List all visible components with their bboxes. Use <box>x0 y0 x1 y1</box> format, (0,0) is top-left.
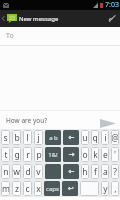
staticText: 7:03 <box>105 0 119 10</box>
staticText: k <box>93 149 98 161</box>
staticText: s <box>3 132 8 144</box>
button[interactable]: e <box>101 147 109 162</box>
button[interactable]: p <box>34 147 43 162</box>
staticText: h <box>82 166 88 178</box>
button[interactable]: a <box>101 164 109 179</box>
button[interactable]: Attach <box>105 10 120 27</box>
button[interactable]: Send <box>97 111 120 129</box>
button[interactable]: i <box>101 130 109 145</box>
button[interactable]: j <box>34 130 43 145</box>
staticText: r <box>26 149 30 161</box>
staticText: g <box>14 149 20 161</box>
button[interactable]: key <box>45 164 61 179</box>
button[interactable]: key <box>63 147 79 162</box>
staticText: q <box>92 132 98 144</box>
staticText: f <box>94 166 97 178</box>
button[interactable]: 1&! <box>45 147 61 162</box>
staticText: @ <box>111 132 119 144</box>
staticText: caps <box>46 185 59 193</box>
button[interactable]: c <box>23 181 32 196</box>
staticText: p <box>36 149 42 161</box>
button[interactable]: y <box>101 181 109 196</box>
button[interactable]: q <box>91 130 99 145</box>
button[interactable]: g <box>12 147 21 162</box>
button[interactable]: x <box>34 181 42 196</box>
staticText: , <box>114 183 117 195</box>
staticText: y <box>103 183 108 195</box>
staticText: m <box>2 183 10 195</box>
staticText: d <box>25 166 31 178</box>
staticText: a b <box>49 134 58 142</box>
button[interactable]: h <box>81 164 89 179</box>
button[interactable]: d <box>23 164 32 179</box>
button[interactable]: ? <box>111 164 119 179</box>
staticText: t <box>4 149 8 161</box>
button[interactable]: ' <box>111 147 119 162</box>
button[interactable]: t <box>1 147 10 162</box>
button[interactable]: key <box>62 181 78 196</box>
staticText: To <box>6 31 14 41</box>
staticText: v <box>36 166 41 178</box>
button[interactable]: o <box>81 147 89 162</box>
button[interactable]: @ <box>111 130 119 145</box>
staticText: o <box>82 149 88 161</box>
staticText: i <box>104 132 107 144</box>
staticText: n <box>3 166 9 178</box>
button[interactable]: Space <box>80 181 99 196</box>
button[interactable]: Navigate up <box>1 10 17 27</box>
button[interactable]: , <box>111 181 119 196</box>
button[interactable]: b <box>12 130 21 145</box>
button[interactable]: r <box>23 147 32 162</box>
button[interactable]: l <box>23 130 32 145</box>
button[interactable]: s <box>1 130 10 145</box>
staticText: New message <box>19 15 59 23</box>
button[interactable]: caps <box>44 181 60 196</box>
button[interactable]: m <box>1 181 10 196</box>
button[interactable]: v <box>34 164 43 179</box>
staticText: j <box>37 132 40 144</box>
button[interactable]: a b <box>45 130 61 145</box>
staticText: ' <box>114 149 116 161</box>
button[interactable]: key <box>63 164 79 179</box>
staticText: e <box>103 149 108 161</box>
button[interactable]: f <box>91 164 99 179</box>
staticText: ? <box>113 166 117 178</box>
staticText: 1&! <box>48 151 58 159</box>
button[interactable]: u <box>81 130 89 145</box>
staticText: c <box>25 183 30 195</box>
button[interactable]: key <box>63 130 79 145</box>
staticText: a <box>103 166 108 178</box>
button[interactable]: n <box>1 164 10 179</box>
staticText: l <box>26 132 29 144</box>
staticText: How are you? <box>6 116 97 125</box>
staticText: z <box>15 183 19 195</box>
staticText: w <box>13 166 20 178</box>
button[interactable]: z <box>12 181 21 196</box>
button[interactable]: k <box>91 147 99 162</box>
button[interactable]: w <box>12 164 21 179</box>
staticText: b <box>14 132 20 144</box>
staticText: x <box>36 183 41 195</box>
staticText: u <box>82 132 88 144</box>
